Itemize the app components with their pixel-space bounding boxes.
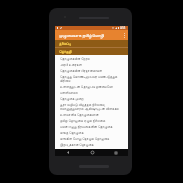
button[interactable]: உள்ளத்தூடன் தொழுபவ தன்மையோ [55,83,128,89]
staticText: தலைப்பு [59,42,71,46]
staticText: சூரா வழிபடு விருத்தம் நிலைமை, ஈமானுத்துவ… [60,102,125,111]
button[interactable]: தொழுகை முறை [55,95,128,101]
staticText: உள்ளத்தூடன் தொழுபவ தன்மையோ [60,84,113,89]
button[interactable]: Recent apps [104,149,128,156]
staticText: முழுமையாக தமிழ்மொழி தொகுப்பு [59,32,120,38]
button[interactable]: தமிழ் தொழுகை ஏழும் நிலைமை [55,117,128,123]
button[interactable]: Back [55,149,80,156]
staticText: தொழுது கொண்டிருப்பவர் பயன்படுத்தும் கிரி… [60,74,125,83]
button[interactable]: தொழுது கொண்டிருப்பவர் பயன்படுத்தும் கிரி… [55,73,128,83]
staticText: தொழுகையின் நேரம் [60,56,90,61]
staticText: தொழுகையின் பிரதானமாகள் [60,68,103,73]
button[interactable]: தலைப்பு [55,40,128,47]
button[interactable]: தொகுதி [55,48,128,55]
button[interactable]: இறப்புக்கான தொழுகை [55,141,128,147]
staticText: அரபி உரைகள் [60,62,82,67]
button[interactable]: Home [80,149,104,156]
staticText: காயத் தொழுகை [60,130,84,135]
staticText: காங்கிள் போது தொழும் தொழுகை [60,136,110,141]
staticText: பள்ளிவாசல் [60,91,78,94]
button[interactable]: More options [120,30,128,40]
button[interactable]: பள்ளிவாசல் [55,89,128,95]
staticText: இறப்புக்கான தொழுகை [60,142,94,147]
staticText: பயன் எழுது நிர்பபங்களின் தொழுகை [60,124,113,129]
staticText: 4:55 [120,26,126,30]
button[interactable]: தொழுகையின் நேரம் [55,55,128,61]
button[interactable]: தொழுகையின் பிரதானமாகள் [55,67,128,73]
staticText: தொழுகை முறை [60,96,84,101]
button[interactable]: சூரா வழிபடு விருத்தம் நிலைமை, ஈமானுத்துவ… [55,101,128,111]
staticText: தொகுதி [59,50,72,54]
staticText: தமிழ் தொழுகை ஏழும் நிலைமை [60,118,106,123]
button[interactable]: காயத் தொழுகை [55,129,128,135]
button[interactable]: அரபி உரைகள் [55,61,128,67]
button[interactable]: காங்கிள் போது தொழும் தொழுகை [55,135,128,141]
button[interactable]: பயன் எழுது நிர்பபங்களின் தொழுகை [55,123,128,129]
staticText: உளவாளிக் தொழுகையான் [60,112,99,117]
button[interactable]: உளவாளிக் தொழுகையான் [55,111,128,117]
